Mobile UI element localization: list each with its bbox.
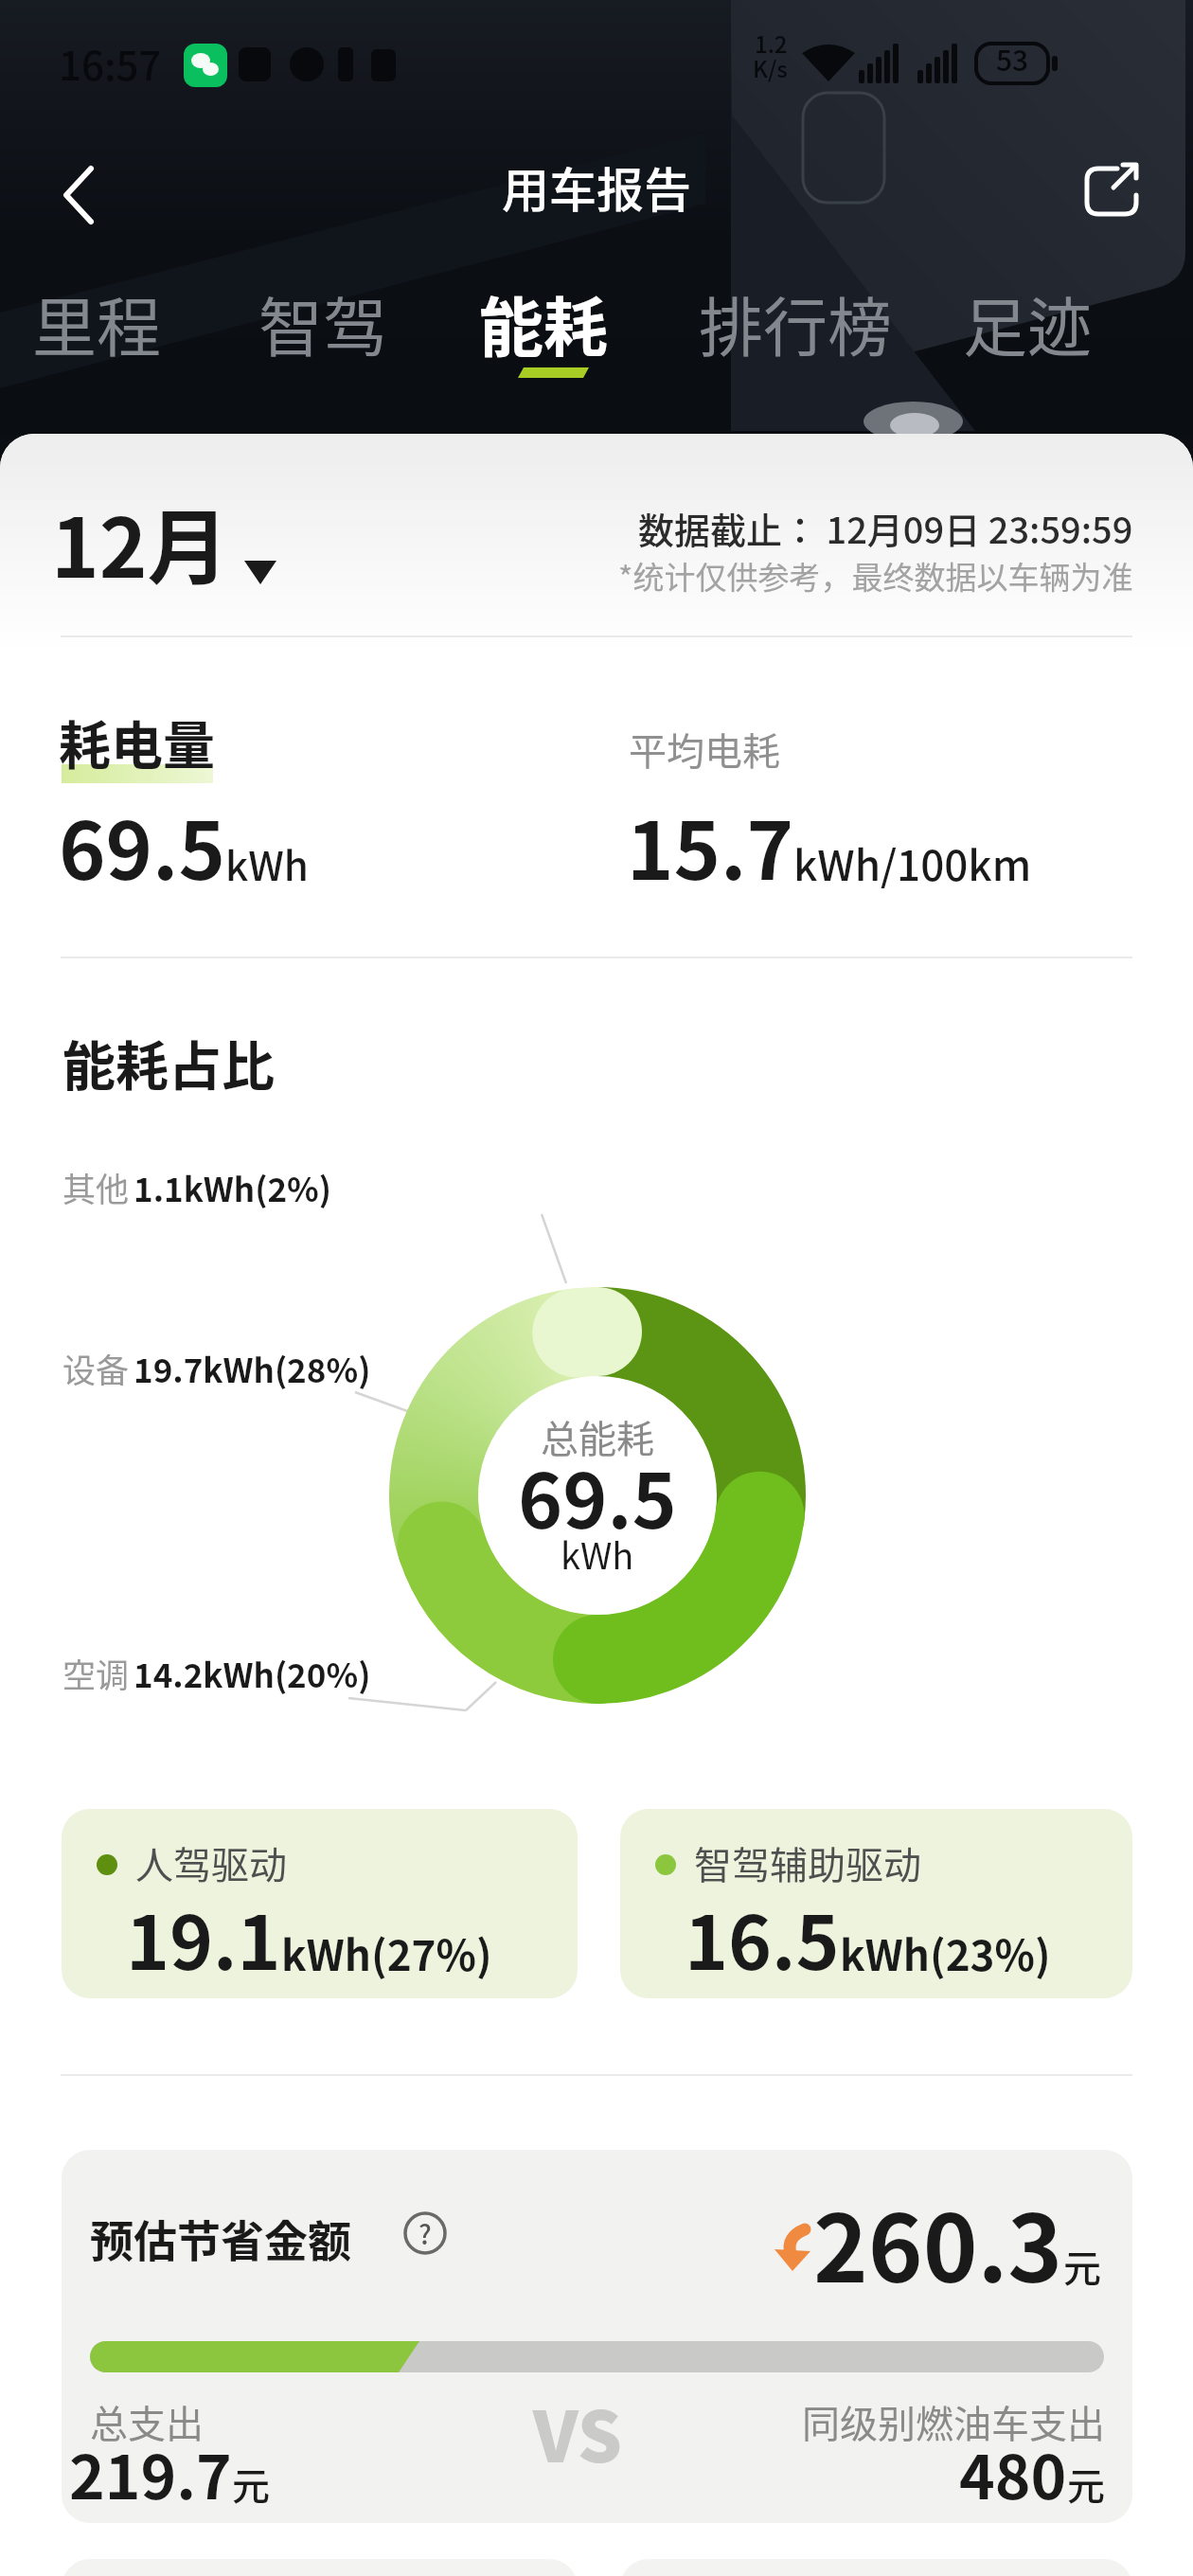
staticText: 16.5 — [685, 1885, 840, 1992]
staticText: 53 — [996, 38, 1029, 79]
staticText: 69.5 — [59, 788, 225, 903]
button[interactable] — [1083, 159, 1144, 220]
staticText: 足迹 — [963, 277, 1092, 369]
staticText: 智驾辅助驱动 — [694, 1835, 921, 1890]
staticText: *统计仅供参考，最终数据以车辆为准 — [618, 553, 1133, 599]
button[interactable]: 智驾 — [258, 277, 387, 383]
staticText: 1.2 — [755, 27, 788, 60]
button[interactable]: 人驾驱动 — [62, 1809, 578, 1998]
staticText: 空调 — [62, 1649, 130, 1697]
staticText: 同级别燃油车支出 — [802, 2394, 1105, 2449]
staticText: 人驾驱动 — [135, 1835, 287, 1890]
staticText: 能耗 — [479, 277, 608, 369]
staticText: 智驾 — [258, 277, 387, 369]
staticText: 元 — [1067, 2457, 1105, 2512]
staticText: 19.7kWh(28%) — [134, 1344, 371, 1392]
staticText: kWh — [225, 834, 309, 892]
staticText: 元 — [1063, 2239, 1101, 2294]
staticText: 480 — [959, 2429, 1067, 2517]
staticText: 耗电量 — [59, 704, 216, 779]
staticText: 1.1kWh(2%) — [134, 1163, 332, 1211]
staticText: 19.1 — [126, 1885, 281, 1992]
staticText: 能耗占比 — [62, 1024, 275, 1100]
staticText: 12月 — [51, 483, 229, 597]
staticText: VS — [533, 2381, 622, 2482]
staticText: kWh(27%) — [281, 1923, 492, 1983]
staticText: ? — [418, 2214, 432, 2253]
staticText: kWh — [561, 1528, 634, 1580]
button[interactable]: 12月 — [51, 483, 288, 597]
button[interactable]: ? — [403, 2211, 447, 2255]
button[interactable]: 足迹 — [963, 277, 1092, 383]
staticText: 排行榜 — [699, 277, 892, 369]
staticText: kWh(23%) — [840, 1923, 1051, 1983]
staticText: 元 — [232, 2457, 270, 2512]
button[interactable]: 排行榜 — [699, 277, 892, 383]
staticText: 69.5 — [518, 1440, 677, 1550]
staticText: 其他 — [62, 1163, 130, 1211]
staticText: 平均电耗 — [629, 722, 780, 777]
staticText: 设备 — [62, 1344, 130, 1392]
staticText: 里程 — [32, 277, 161, 369]
button[interactable]: 能耗 — [479, 277, 608, 383]
staticText: 数据截止： 12月09日 23:59:59 — [638, 502, 1133, 554]
button[interactable]: 里程 — [32, 277, 161, 383]
staticText: 219.7 — [69, 2429, 232, 2517]
staticText: 总能耗 — [541, 1409, 654, 1464]
staticText: 16:57 — [59, 34, 162, 92]
staticText: K/s — [753, 51, 788, 84]
staticText: 15.7 — [627, 788, 793, 903]
staticText: 14.2kWh(20%) — [134, 1649, 371, 1697]
button[interactable] — [44, 157, 112, 225]
staticText: 预估节省金额 — [90, 2207, 351, 2270]
staticText: 总支出 — [90, 2394, 204, 2449]
staticText: kWh/100km — [793, 832, 1032, 893]
staticText: 260.3 — [813, 2174, 1063, 2309]
button[interactable]: 智驾辅助驱动 — [620, 1809, 1132, 1998]
staticText: 用车报告 — [502, 152, 691, 221]
